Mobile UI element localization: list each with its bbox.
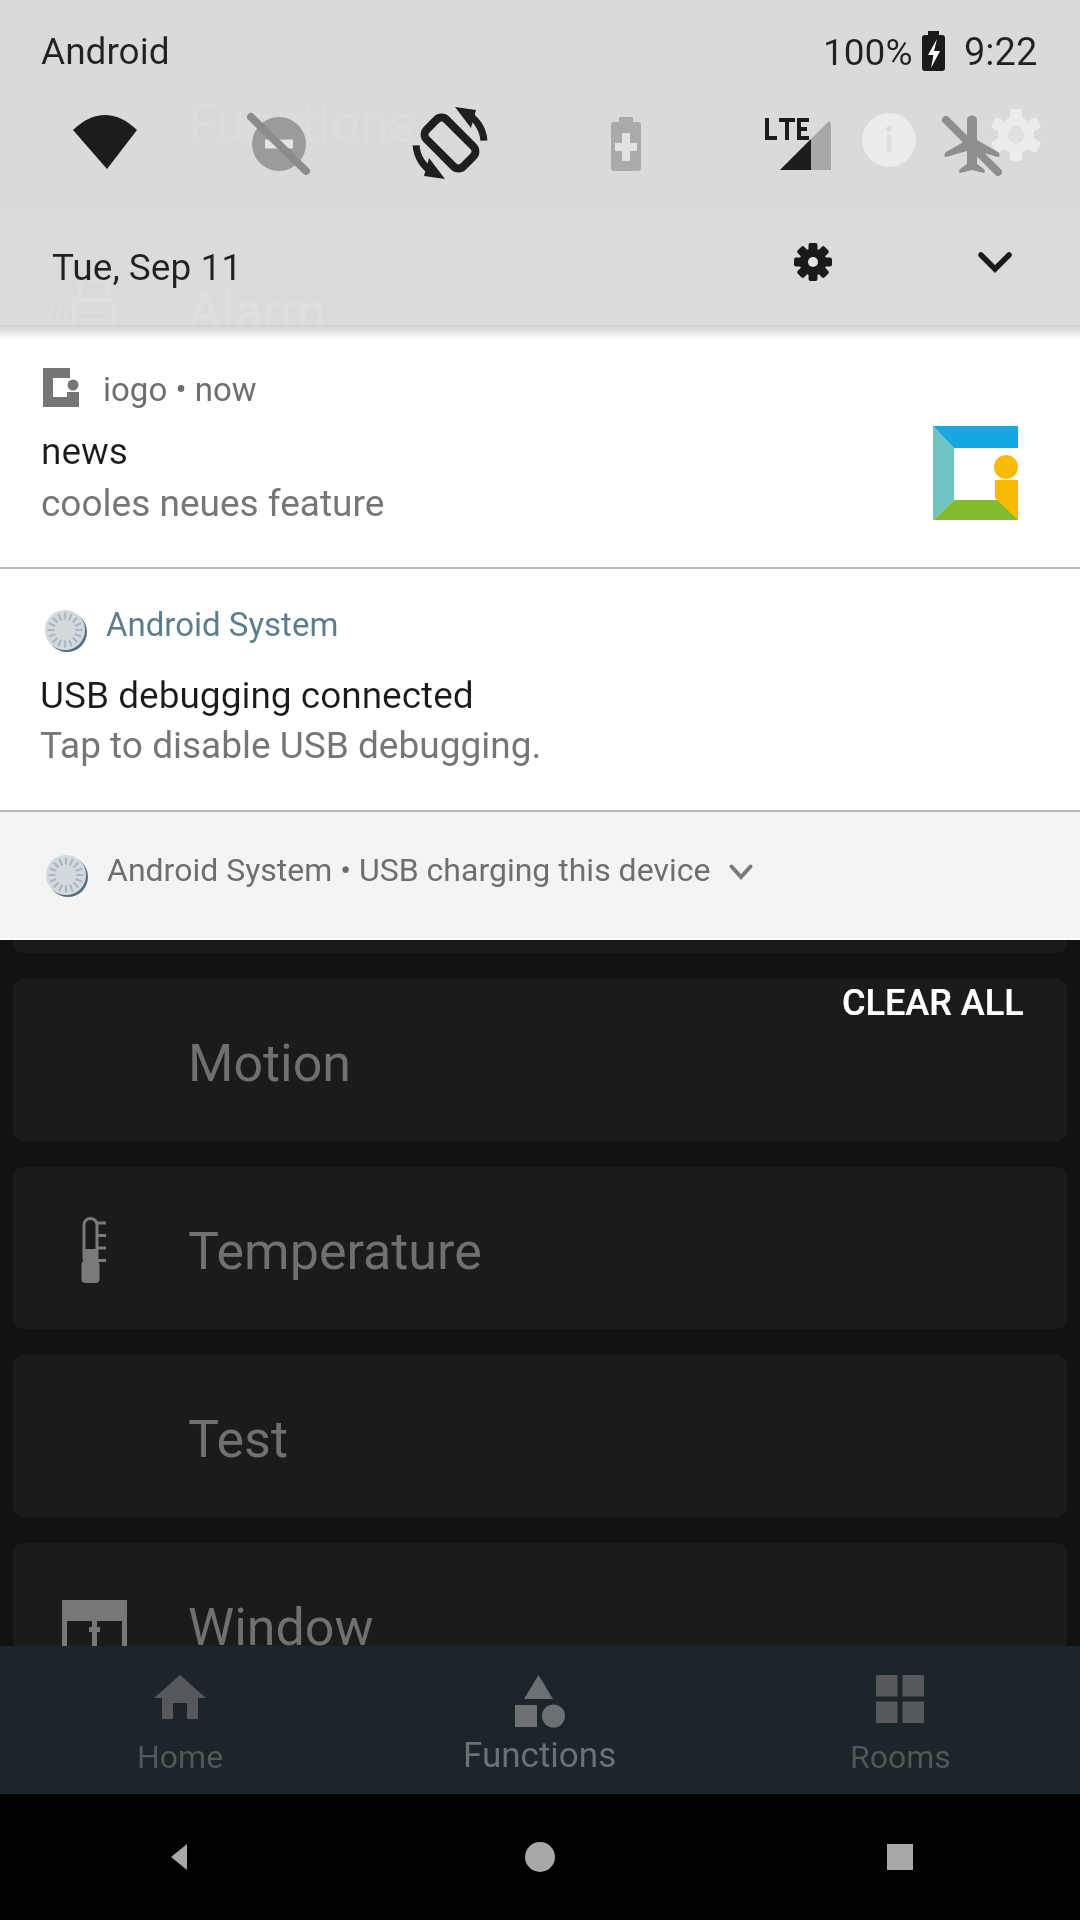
staticText: Temperature: [188, 1221, 482, 1282]
staticText: 100%: [823, 31, 913, 74]
staticText: 9:22: [964, 30, 1038, 75]
button[interactable]: Functions: [360, 1646, 720, 1794]
staticText: news: [41, 430, 128, 473]
button[interactable]: Light: [13, 415, 1067, 577]
other: Info: [862, 113, 916, 167]
staticText: Switch: [188, 845, 344, 906]
other: Wi-Fi: [72, 115, 138, 171]
staticText: Rooms: [850, 1738, 951, 1776]
other: LTE signal: [765, 118, 831, 170]
staticText: Home: [137, 1738, 224, 1776]
staticText: Android System: [106, 605, 339, 644]
button[interactable]: LTE signal: [748, 94, 848, 194]
button[interactable]: Wi-Fi: [55, 93, 155, 193]
staticText: Window: [188, 1597, 374, 1658]
staticText: USB debugging connected: [40, 674, 474, 717]
button[interactable]: Back: [140, 1817, 220, 1897]
staticText: Android: [41, 30, 170, 73]
other: Auto rotate: [408, 101, 492, 185]
staticText: Tap to disable USB debugging.: [40, 724, 542, 767]
other: Settings: [990, 109, 1042, 161]
button[interactable]: Switch: [13, 791, 1067, 953]
button[interactable]: Alarm: [13, 227, 1067, 389]
staticText: Alarm: [188, 281, 327, 342]
staticText: Test: [188, 1409, 288, 1470]
staticText: CLEAR ALL: [842, 982, 1024, 1024]
staticText: Android System • USB charging this devic…: [107, 851, 711, 889]
staticText: Functions: [463, 1735, 617, 1776]
staticText: Light: [188, 469, 304, 530]
button[interactable]: Airplane mode off: [922, 94, 1022, 194]
button[interactable]: Recent apps: [860, 1817, 940, 1897]
staticText: cooles neues feature: [41, 482, 385, 525]
staticText: Tue, Sep 11: [52, 246, 242, 289]
staticText: Motion: [188, 1033, 352, 1094]
button[interactable]: Android System • USB charging this devic…: [0, 812, 1080, 938]
staticText: iogo • now: [103, 370, 257, 409]
button[interactable]: Functions: [13, 39, 1067, 201]
button[interactable]: Settings: [768, 217, 858, 307]
button[interactable]: Test: [13, 1355, 1067, 1517]
button[interactable]: Battery saver: [576, 94, 676, 194]
button[interactable]: iogo • now: [0, 325, 1080, 567]
button[interactable]: Android System: [0, 569, 1080, 810]
button[interactable]: CLEAR ALL: [800, 962, 1065, 1044]
button[interactable]: Settings: [966, 85, 1066, 185]
button[interactable]: Home: [0, 1646, 360, 1794]
button[interactable]: Expand: [950, 218, 1040, 308]
other: Do not disturb: [244, 109, 314, 179]
button[interactable]: Window: [13, 1543, 1067, 1705]
button[interactable]: Info: [839, 90, 939, 190]
staticText: Socket: [188, 657, 347, 718]
button[interactable]: Do not disturb: [229, 94, 329, 194]
button[interactable]: Socket: [13, 603, 1067, 765]
staticText: Functions: [188, 93, 416, 154]
button[interactable]: Motion: [13, 979, 1067, 1141]
button[interactable]: Home: [500, 1817, 580, 1897]
other: Battery saver: [611, 117, 641, 171]
button[interactable]: Rooms: [720, 1646, 1080, 1794]
other: Airplane mode off: [944, 114, 1000, 174]
button[interactable]: Temperature: [13, 1167, 1067, 1329]
button[interactable]: Auto rotate: [400, 93, 500, 193]
